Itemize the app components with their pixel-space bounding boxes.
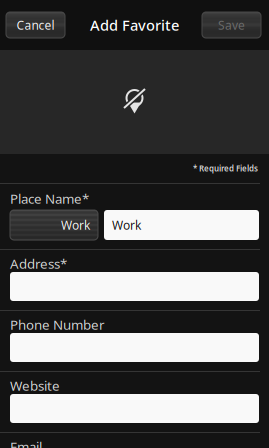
staticText: Phone Number	[10, 315, 105, 334]
staticText: Cancel	[16, 17, 54, 33]
button[interactable]: Cancel	[6, 12, 65, 38]
staticText: Email	[10, 437, 42, 448]
staticText: Work	[112, 217, 141, 233]
button[interactable]	[10, 333, 259, 362]
button[interactable]	[10, 272, 259, 301]
staticText: Save	[218, 17, 245, 33]
staticText: Work	[61, 217, 90, 233]
button[interactable]: Work	[104, 210, 259, 240]
staticText: Website	[10, 376, 60, 395]
staticText: Add Favorite	[90, 15, 179, 35]
button[interactable]: Work	[10, 210, 98, 240]
staticText: Address*	[10, 254, 67, 273]
button[interactable]	[10, 394, 259, 423]
staticText: Place Name*	[10, 189, 89, 208]
staticText: * Required Fields	[193, 163, 258, 174]
button[interactable]: Save	[202, 12, 261, 38]
